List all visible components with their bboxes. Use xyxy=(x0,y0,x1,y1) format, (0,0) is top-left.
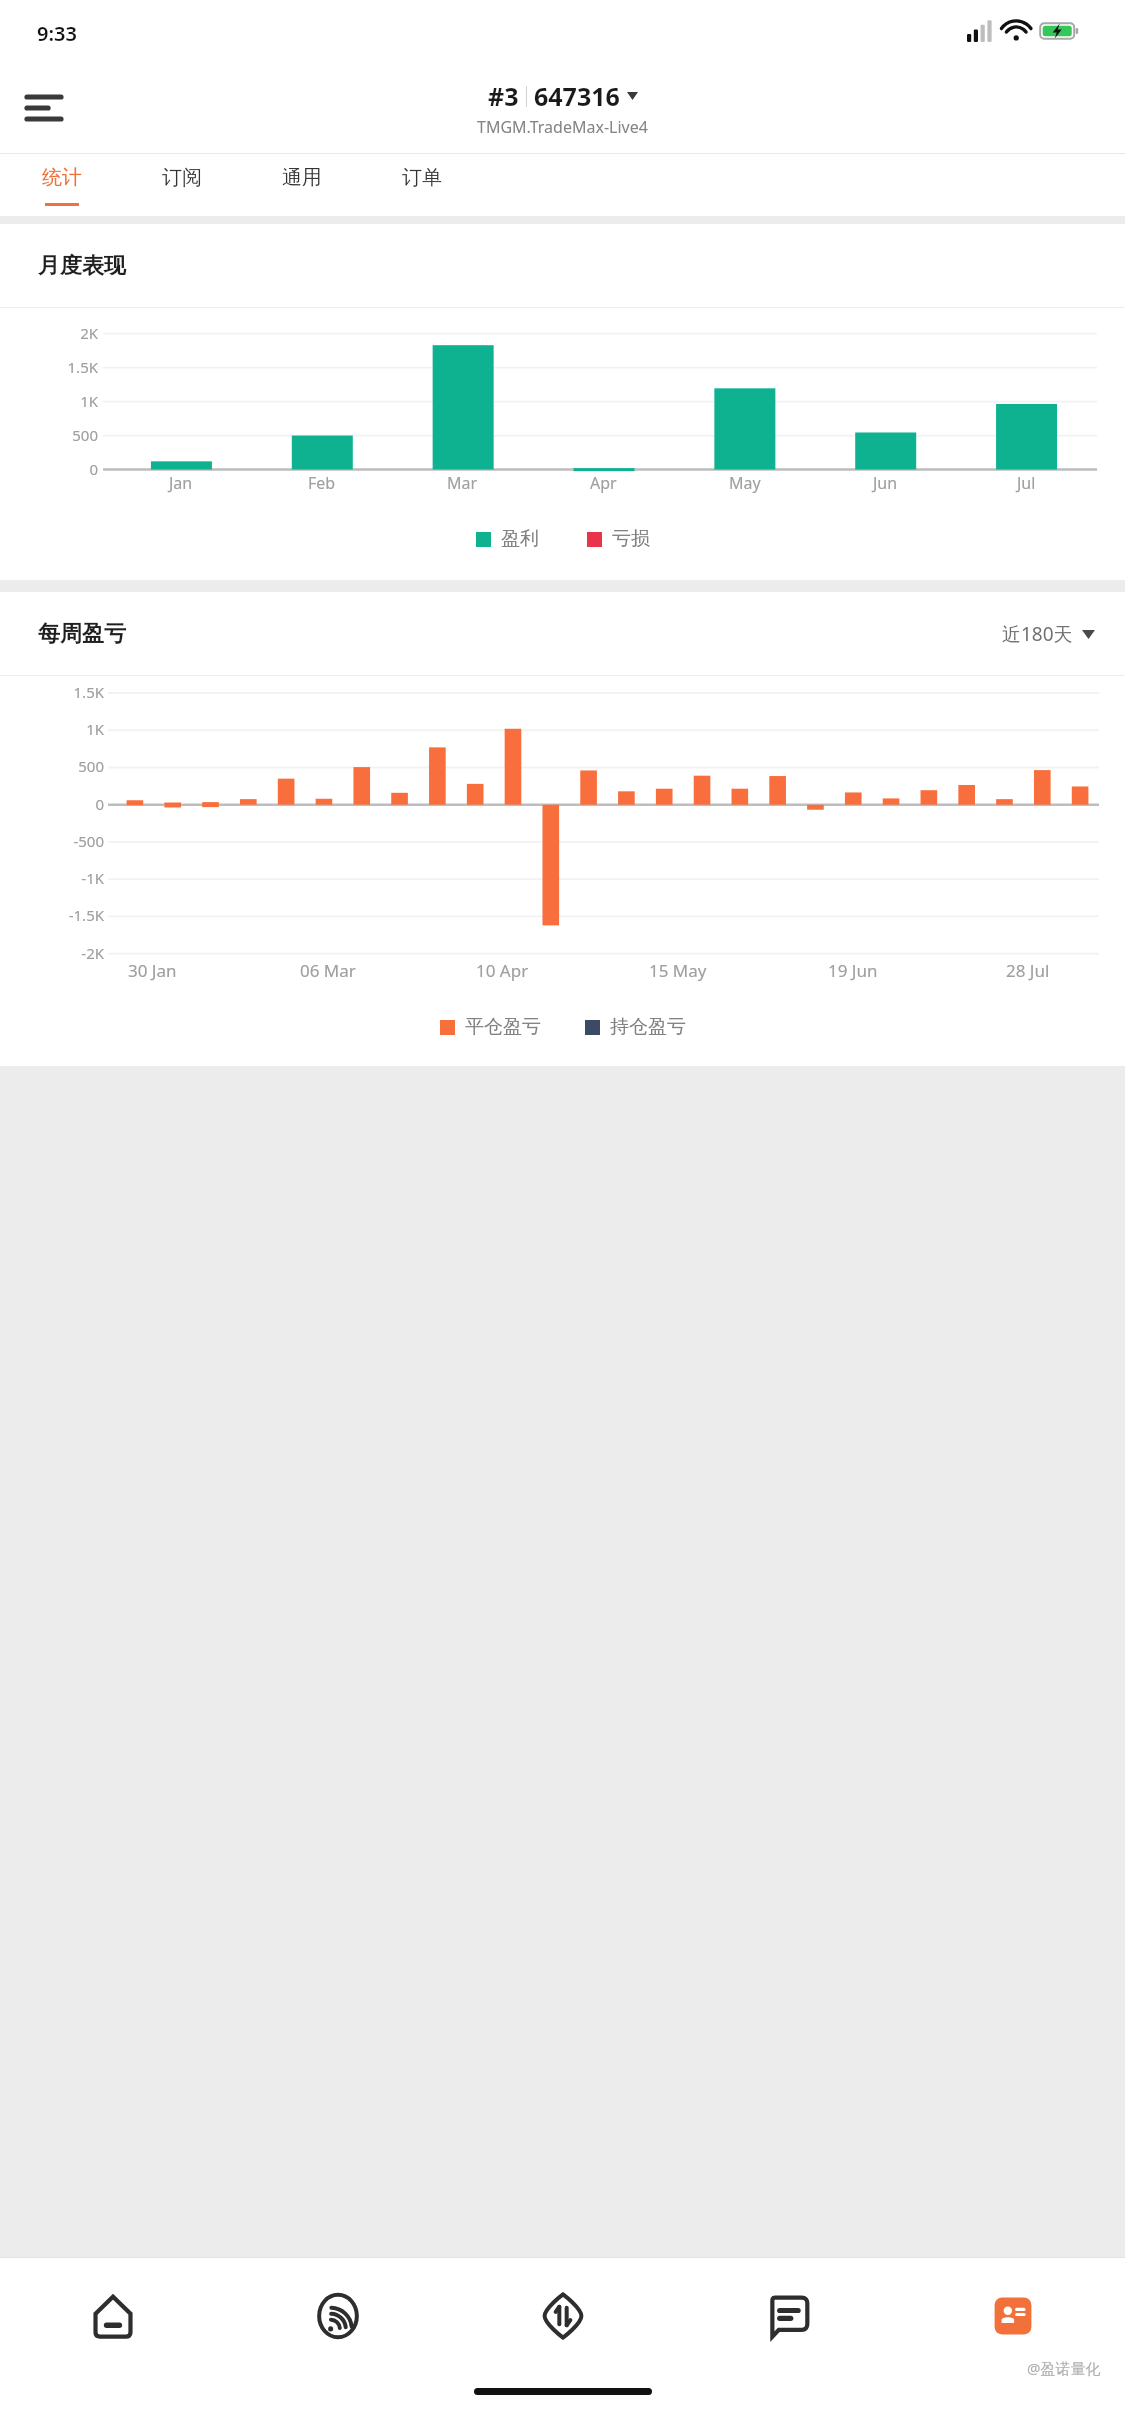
staticText: 06 Mar xyxy=(300,959,356,982)
staticText: TMGM.TradeMax-Live4 xyxy=(477,116,648,138)
staticText: 1K xyxy=(0,719,104,739)
staticText: 统计 xyxy=(42,165,82,190)
button[interactable]: 亏损 xyxy=(587,527,650,551)
button[interactable]: Menu xyxy=(16,80,72,136)
staticText: Jul xyxy=(1017,472,1036,494)
button[interactable]: 持仓盈亏 xyxy=(585,1015,686,1039)
staticText: 盈利 xyxy=(501,527,539,551)
staticText: #3 xyxy=(488,79,519,113)
staticText: 持仓盈亏 xyxy=(610,1015,686,1039)
staticText: -500 xyxy=(0,831,104,851)
staticText: 500 xyxy=(0,425,98,445)
staticText: Mar xyxy=(447,472,478,494)
staticText: Jun xyxy=(873,472,898,494)
staticText: -2K xyxy=(0,943,104,963)
staticText: Feb xyxy=(308,472,336,494)
staticText: 1K xyxy=(0,391,98,411)
staticText: 0 xyxy=(0,459,98,479)
staticText: 647316 xyxy=(534,79,620,113)
staticText: -1K xyxy=(0,868,104,888)
button[interactable]: Signals xyxy=(225,2258,450,2374)
staticText: 15 May xyxy=(649,959,707,982)
button[interactable]: Messages xyxy=(675,2258,900,2374)
staticText: May xyxy=(729,472,761,494)
button[interactable]: 近180天 xyxy=(1002,621,1095,647)
staticText: 每周盈亏 xyxy=(38,620,126,648)
button[interactable]: 统计 xyxy=(14,154,110,216)
staticText: 28 Jul xyxy=(1006,959,1050,982)
button[interactable]: 订单 xyxy=(374,154,470,216)
button[interactable]: 平仓盈亏 xyxy=(440,1015,541,1039)
staticText: 0 xyxy=(0,794,104,814)
staticText: 1.5K xyxy=(0,682,104,702)
button[interactable]: 订阅 xyxy=(134,154,230,216)
staticText: 1.5K xyxy=(0,357,98,377)
button[interactable]: Home xyxy=(0,2258,225,2374)
staticText: 平仓盈亏 xyxy=(465,1015,541,1039)
button[interactable]: 盈利 xyxy=(476,527,539,551)
staticText: 10 Apr xyxy=(476,959,529,982)
staticText: 9:33 xyxy=(37,20,77,47)
staticText: 500 xyxy=(0,756,104,776)
staticText: Apr xyxy=(590,472,617,494)
staticText: 订单 xyxy=(402,165,442,190)
staticText: 19 Jun xyxy=(828,959,878,982)
staticText: 近180天 xyxy=(1002,621,1073,647)
staticText: 通用 xyxy=(282,165,322,190)
button[interactable]: Trade xyxy=(450,2258,675,2374)
button[interactable]: Profile xyxy=(900,2258,1125,2374)
staticText: 订阅 xyxy=(162,165,202,190)
staticText: 30 Jan xyxy=(128,959,177,982)
staticText: Jan xyxy=(169,472,193,494)
staticText: 亏损 xyxy=(612,527,650,551)
staticText: 2K xyxy=(0,323,98,343)
staticText: @盈诺量化 xyxy=(1027,2358,1101,2378)
button[interactable]: 通用 xyxy=(254,154,350,216)
button[interactable]: #3 xyxy=(477,79,648,138)
staticText: 月度表现 xyxy=(38,252,126,280)
staticText: -1.5K xyxy=(0,905,104,925)
